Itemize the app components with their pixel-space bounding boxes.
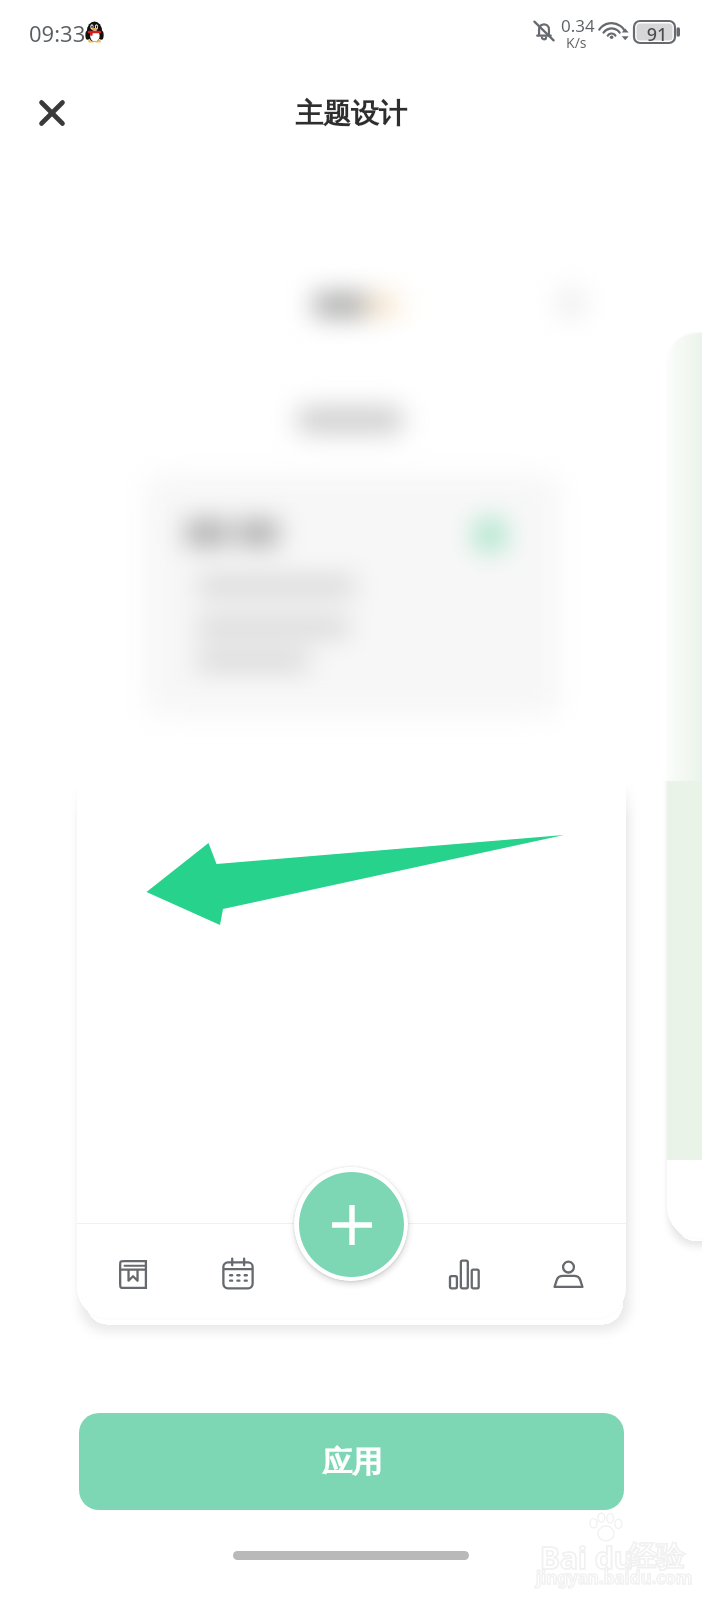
staticText: K/s — [566, 33, 587, 52]
button[interactable]: Library — [95, 1236, 171, 1312]
staticText: 经验 — [628, 1539, 684, 1574]
staticText: 主题设计 — [0, 96, 702, 131]
button[interactable]: Close — [24, 85, 80, 141]
button[interactable]: 应用 — [79, 1413, 624, 1510]
button[interactable]: Stats — [426, 1236, 502, 1312]
staticText: 09:33 — [29, 18, 86, 48]
button[interactable]: Add — [294, 1167, 408, 1281]
button[interactable]: Profile — [530, 1236, 606, 1312]
button[interactable]: Calendar — [200, 1236, 276, 1312]
staticText: Bai du — [540, 1537, 634, 1578]
staticText: 0.34 — [561, 14, 595, 37]
staticText: jingyan.baidu.com — [536, 1566, 693, 1589]
staticText: 应用 — [322, 1443, 382, 1481]
staticText: 91 — [641, 22, 673, 47]
